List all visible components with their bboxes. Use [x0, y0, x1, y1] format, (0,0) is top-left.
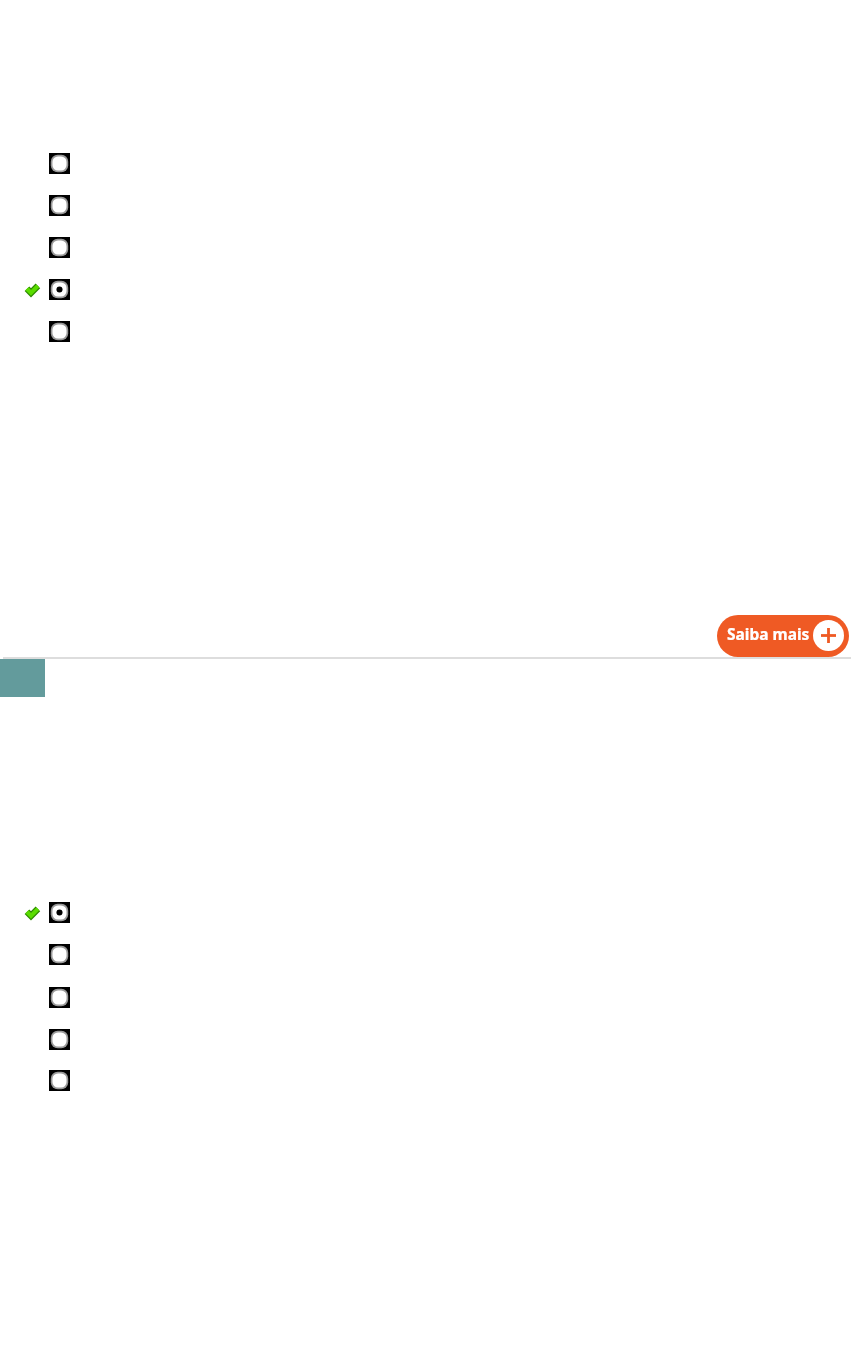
- button[interactable]: Option 4, selected: [49, 279, 70, 300]
- button[interactable]: Option 3: [49, 237, 70, 258]
- button[interactable]: Option A, selected: [49, 902, 70, 923]
- button[interactable]: Saiba mais: [717, 615, 849, 657]
- other: Selected: [25, 906, 40, 919]
- other: Selected: [25, 283, 40, 296]
- button[interactable]: Option C: [49, 987, 70, 1008]
- button[interactable]: Option 2: [49, 195, 70, 216]
- staticText: Saiba mais: [727, 623, 810, 644]
- button[interactable]: Option E: [49, 1070, 70, 1091]
- button[interactable]: Option 1: [49, 153, 70, 174]
- button[interactable]: Option 5: [49, 321, 70, 342]
- button[interactable]: Option B: [49, 944, 70, 965]
- button[interactable]: Option D: [49, 1029, 70, 1050]
